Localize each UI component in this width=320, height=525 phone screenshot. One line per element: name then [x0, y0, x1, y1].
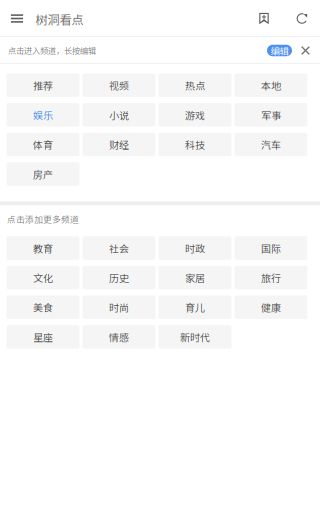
button[interactable]: 历史: [82, 266, 155, 289]
button[interactable]: 推荐: [6, 73, 79, 97]
staticText: 教育: [33, 241, 53, 255]
staticText: 房产: [33, 167, 53, 181]
staticText: 新时代: [180, 330, 210, 344]
button[interactable]: 新时代: [158, 325, 231, 349]
button[interactable]: 文化: [6, 266, 79, 289]
button[interactable]: 国际: [234, 236, 307, 260]
staticText: 小说: [109, 108, 129, 122]
button[interactable]: 健康: [234, 295, 307, 319]
button[interactable]: 游戏: [158, 103, 231, 127]
button[interactable]: Bookmark: [244, 0, 284, 37]
staticText: 点击添加更多频道: [7, 212, 79, 225]
button[interactable]: 汽车: [234, 133, 307, 156]
button[interactable]: 教育: [6, 236, 79, 260]
staticText: 文化: [33, 270, 53, 285]
staticText: 健康: [261, 300, 281, 314]
staticText: 体育: [33, 137, 53, 152]
staticText: 树洞看点: [35, 10, 83, 28]
staticText: 育儿: [185, 300, 205, 314]
staticText: 视频: [109, 78, 129, 92]
button[interactable]: Refresh: [284, 0, 320, 37]
staticText: 家居: [185, 270, 205, 285]
staticText: 点击进入频道，长按编辑: [8, 44, 96, 56]
staticText: 社会: [109, 241, 129, 255]
staticText: 星座: [33, 330, 53, 344]
button[interactable]: 时政: [158, 236, 231, 260]
button[interactable]: 财经: [82, 133, 155, 156]
button[interactable]: Menu: [0, 0, 34, 37]
button[interactable]: 家居: [158, 266, 231, 289]
button[interactable]: 视频: [82, 73, 155, 97]
button[interactable]: 体育: [6, 133, 79, 156]
button[interactable]: 热点: [158, 73, 231, 97]
button[interactable]: 育儿: [158, 295, 231, 319]
button[interactable]: Close: [292, 37, 319, 64]
staticText: 时政: [185, 241, 205, 255]
staticText: 本地: [261, 78, 281, 92]
staticText: 美食: [33, 300, 53, 314]
staticText: 推荐: [33, 78, 53, 92]
button[interactable]: 房产: [6, 162, 79, 186]
staticText: 旅行: [261, 270, 281, 285]
staticText: 国际: [261, 241, 281, 255]
staticText: 历史: [109, 270, 129, 285]
staticText: 军事: [261, 108, 281, 122]
button[interactable]: 娱乐: [6, 103, 79, 127]
button[interactable]: 社会: [82, 236, 155, 260]
button[interactable]: 美食: [6, 295, 79, 319]
button[interactable]: 星座: [6, 325, 79, 349]
staticText: 热点: [185, 78, 205, 92]
staticText: 财经: [109, 137, 129, 152]
staticText: 情感: [109, 330, 129, 344]
staticText: 科技: [185, 137, 205, 152]
staticText: 编辑: [270, 44, 288, 57]
button[interactable]: 旅行: [234, 266, 307, 289]
staticText: 时尚: [109, 300, 129, 314]
staticText: 娱乐: [33, 108, 53, 122]
staticText: 汽车: [261, 137, 281, 152]
staticText: 游戏: [185, 108, 205, 122]
button[interactable]: 时尚: [82, 295, 155, 319]
button[interactable]: 小说: [82, 103, 155, 127]
button[interactable]: 情感: [82, 325, 155, 349]
button[interactable]: 编辑: [267, 45, 292, 56]
button[interactable]: 本地: [234, 73, 307, 97]
button[interactable]: 军事: [234, 103, 307, 127]
button[interactable]: 科技: [158, 133, 231, 156]
